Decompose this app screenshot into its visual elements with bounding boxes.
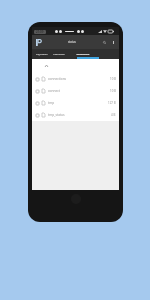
- staticText: connections: [48, 77, 110, 81]
- button[interactable]: connections: [32, 73, 119, 85]
- staticText: 10 B: [110, 89, 116, 93]
- staticText: tmp_status: [48, 113, 111, 117]
- button[interactable]: EQUIPOS: [33, 48, 51, 58]
- staticText: status: [68, 40, 76, 44]
- staticText: SOPORTE: [53, 52, 65, 55]
- button[interactable]: ARCHIVOS: [74, 48, 92, 58]
- button[interactable]: Search: [100, 38, 109, 47]
- staticText: EQUIPOS: [36, 52, 48, 55]
- staticText: 10 B: [110, 77, 116, 81]
- button[interactable]: tmp_status: [32, 109, 119, 121]
- staticText: 21:09: [36, 30, 44, 34]
- staticText: 127 B: [108, 101, 116, 105]
- staticText: tmp: [48, 101, 108, 105]
- button[interactable]: connect: [32, 85, 119, 97]
- staticText: 4 B: [111, 113, 116, 117]
- button[interactable]: tmp: [32, 97, 119, 109]
- button[interactable]: Up one level: [32, 59, 119, 73]
- staticText: connect: [48, 89, 110, 93]
- button[interactable]: SOPORTE: [50, 48, 68, 58]
- button[interactable]: More options: [109, 38, 118, 47]
- button[interactable]: App logo: [34, 37, 44, 47]
- staticText: ARCHIVOS: [76, 52, 90, 55]
